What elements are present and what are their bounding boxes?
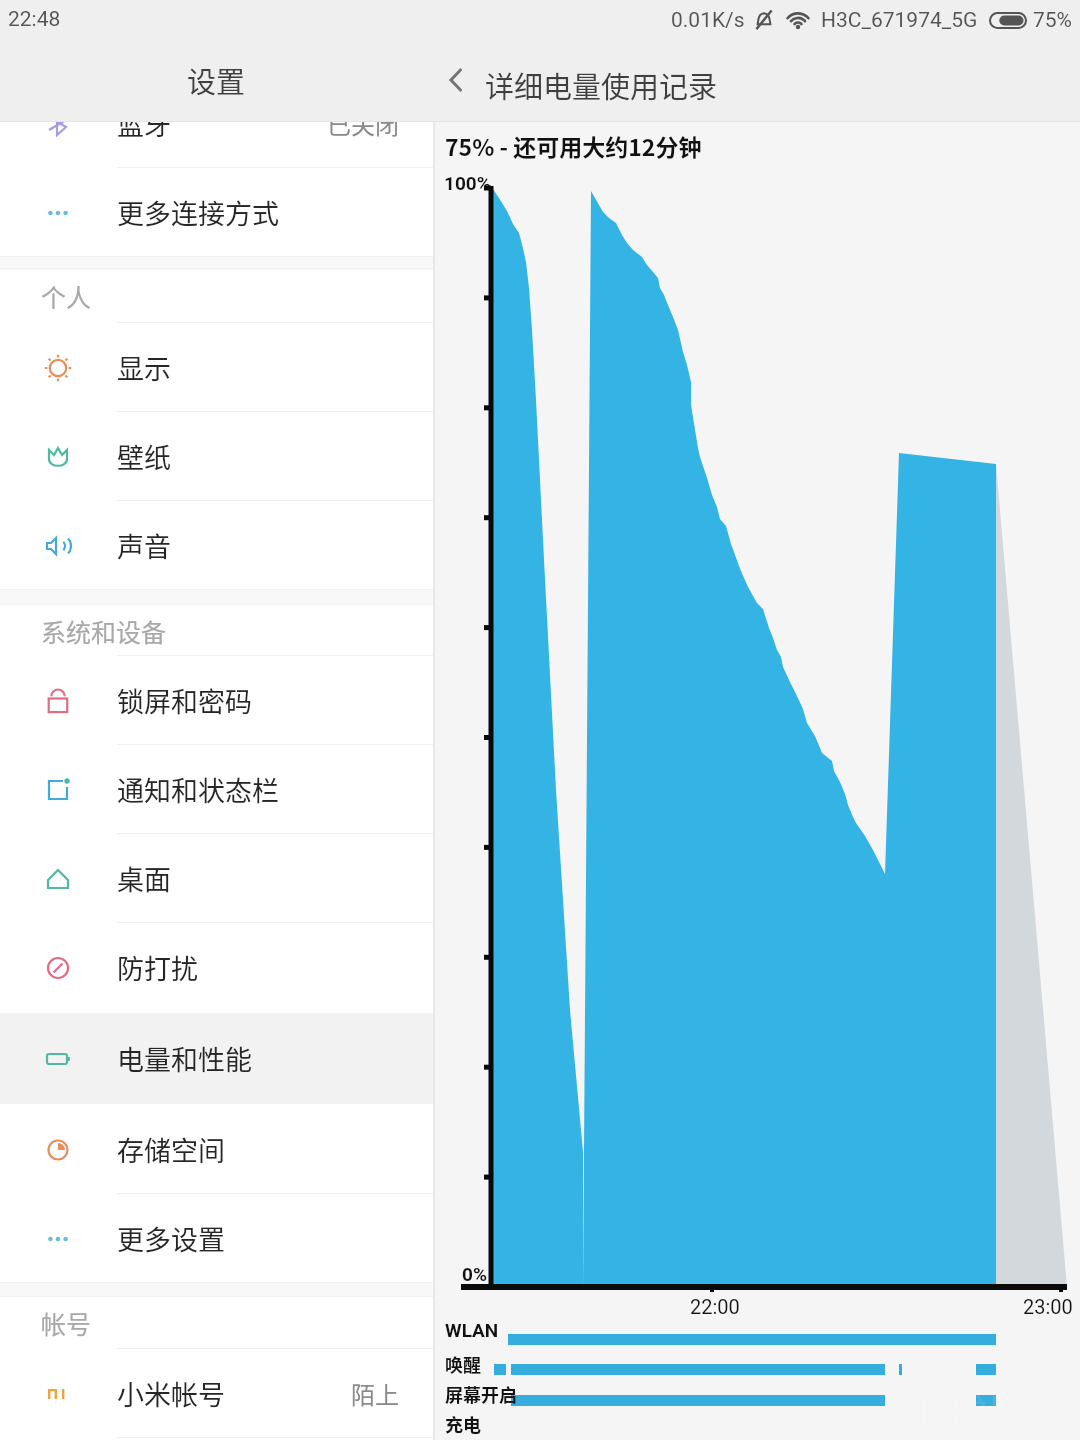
button[interactable]: 显示 <box>0 323 433 412</box>
staticText: 小米帐号 <box>117 1374 225 1413</box>
staticText: 75% - 还可用大约12分钟 <box>445 129 702 162</box>
staticText: 充电 <box>445 1411 481 1437</box>
button[interactable]: 小米帐号 <box>0 1349 433 1438</box>
staticText: 设置 <box>187 59 246 101</box>
staticText: 已关闭 <box>327 106 399 141</box>
button[interactable]: 声音 <box>0 501 433 590</box>
staticText: 通知和状态栏 <box>117 770 279 809</box>
staticText: 防打扰 <box>117 948 198 987</box>
staticText: 蓝牙 <box>117 104 171 143</box>
staticText: 壁纸 <box>117 437 171 476</box>
button[interactable]: 电量和性能 <box>0 1013 433 1104</box>
button[interactable]: 防打扰 <box>0 923 433 1012</box>
button[interactable]: 锁屏和密码 <box>0 656 433 745</box>
staticText: 100% <box>444 172 491 194</box>
staticText: 详细电量使用记录 <box>485 64 718 106</box>
button[interactable]: 通知和状态栏 <box>0 745 433 834</box>
staticText: 0% <box>462 1263 487 1285</box>
staticText: 75% <box>1033 8 1072 33</box>
staticText: 23:00 <box>1023 1295 1073 1318</box>
staticText: 更多设置 <box>117 1219 225 1258</box>
staticText: 小米社区 <box>908 1386 1037 1432</box>
button[interactable]: 更多设置 <box>0 1194 433 1283</box>
staticText: 电量和性能 <box>117 1039 252 1078</box>
button[interactable]: 壁纸 <box>0 412 433 501</box>
staticText: 声音 <box>117 526 171 565</box>
button[interactable]: 存储空间 <box>0 1105 433 1194</box>
staticText: WLAN <box>445 1319 499 1341</box>
staticText: 0.01K/s <box>671 8 745 33</box>
staticText: 帐号 <box>41 1305 92 1341</box>
button[interactable]: 更多连接方式 <box>0 168 433 257</box>
staticText: 桌面 <box>117 859 171 898</box>
button[interactable]: Back <box>430 54 482 106</box>
staticText: 锁屏和密码 <box>117 681 252 720</box>
staticText: 唤醒 <box>445 1351 481 1377</box>
staticText: 系统和设备 <box>41 613 167 649</box>
button[interactable]: 设置 <box>0 54 433 106</box>
button[interactable]: 蓝牙 <box>0 79 433 168</box>
button[interactable]: 桌面 <box>0 834 433 923</box>
staticText: 个人 <box>41 278 92 314</box>
staticText: 22:00 <box>690 1295 740 1318</box>
staticText: 更多连接方式 <box>117 193 279 232</box>
staticText: 屏幕开启 <box>445 1381 517 1407</box>
staticText: 存储空间 <box>117 1130 225 1169</box>
staticText: 显示 <box>117 348 171 387</box>
staticText: H3C_671974_5G <box>821 8 978 33</box>
staticText: 22:48 <box>8 7 61 32</box>
staticText: 陌上 <box>351 1376 399 1411</box>
